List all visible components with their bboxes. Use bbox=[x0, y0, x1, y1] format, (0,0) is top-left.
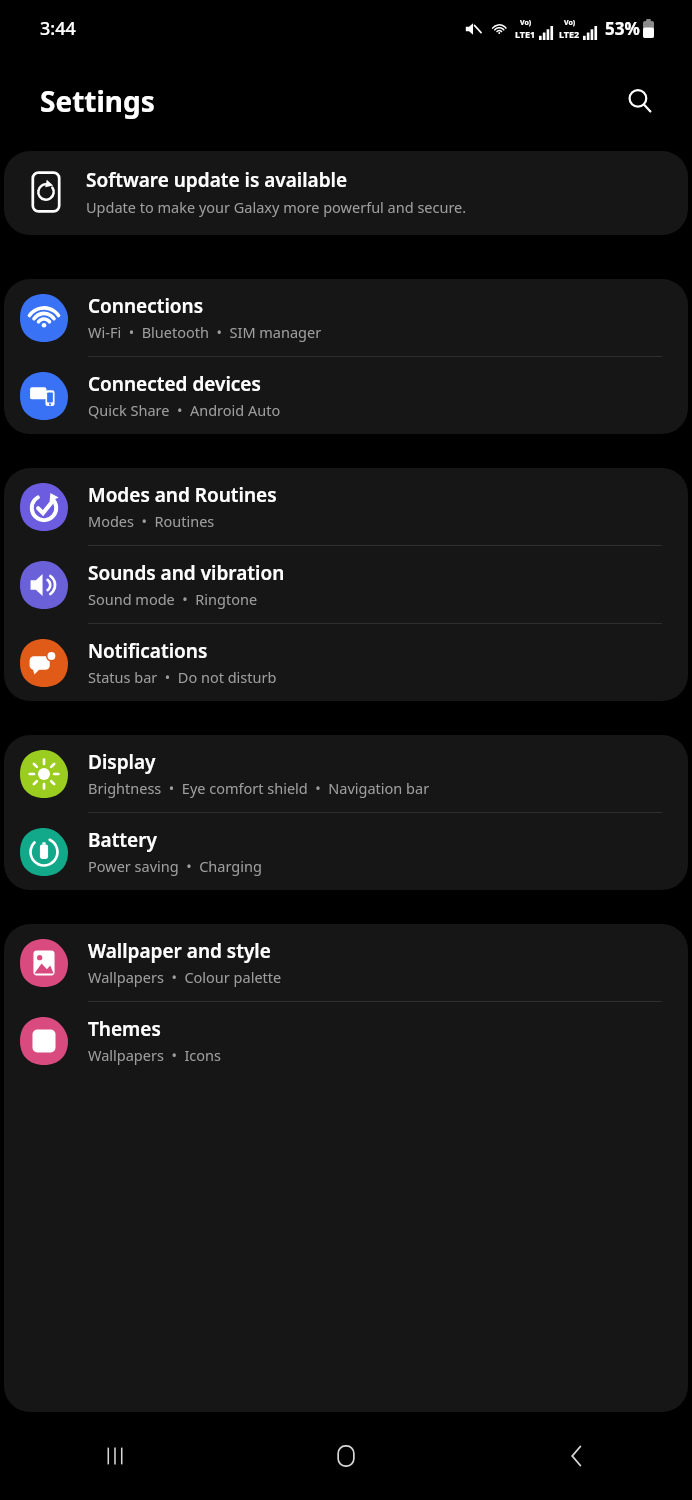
button[interactable]: Display bbox=[4, 735, 688, 812]
staticText: Power saving • Charging bbox=[88, 856, 262, 876]
staticText: Vo) bbox=[564, 18, 576, 28]
staticText: 53% bbox=[605, 17, 640, 40]
staticText: LTE2 bbox=[559, 28, 580, 40]
button[interactable]: Software update is available bbox=[4, 151, 688, 235]
staticText: Modes • Routines bbox=[88, 511, 215, 531]
button[interactable]: Battery bbox=[4, 813, 688, 890]
staticText: Brightness • Eye comfort shield • Naviga… bbox=[88, 778, 430, 798]
staticText: Wi-Fi • Bluetooth • SIM manager bbox=[88, 322, 322, 342]
staticText: Vo) bbox=[520, 18, 532, 28]
staticText: Notifications bbox=[88, 638, 208, 664]
staticText: Update to make your Galaxy more powerful… bbox=[86, 197, 467, 217]
staticText: Wallpapers • Icons bbox=[88, 1045, 221, 1065]
staticText: Connected devices bbox=[88, 371, 261, 397]
button[interactable]: Connected devices bbox=[4, 357, 688, 434]
staticText: Settings bbox=[40, 82, 155, 120]
button[interactable]: Wallpaper and style bbox=[4, 924, 688, 1001]
staticText: Status bar • Do not disturb bbox=[88, 667, 277, 687]
staticText: Battery bbox=[88, 827, 157, 853]
button[interactable]: Notifications bbox=[4, 624, 688, 701]
staticText: Wallpaper and style bbox=[88, 938, 271, 964]
staticText: Quick Share • Android Auto bbox=[88, 400, 281, 420]
staticText: LTE1 bbox=[515, 28, 536, 40]
button[interactable]: Modes and Routines bbox=[4, 468, 688, 545]
staticText: Themes bbox=[88, 1016, 161, 1042]
staticText: Wallpapers • Colour palette bbox=[88, 967, 282, 987]
button[interactable]: Connections bbox=[4, 279, 688, 356]
staticText: Sound mode • Ringtone bbox=[88, 589, 258, 609]
staticText: Connections bbox=[88, 293, 204, 319]
button[interactable]: Sounds and vibration bbox=[4, 546, 688, 623]
staticText: Display bbox=[88, 749, 156, 775]
staticText: 3:44 bbox=[40, 16, 76, 41]
staticText: Modes and Routines bbox=[88, 482, 277, 508]
staticText: Software update is available bbox=[86, 167, 348, 193]
button[interactable]: Recent apps bbox=[0, 1412, 230, 1500]
staticText: Sounds and vibration bbox=[88, 560, 285, 586]
button[interactable]: Back bbox=[461, 1412, 692, 1500]
button[interactable]: Search bbox=[618, 79, 662, 123]
button[interactable]: Themes bbox=[4, 1002, 688, 1079]
button[interactable]: Home bbox=[230, 1412, 461, 1500]
